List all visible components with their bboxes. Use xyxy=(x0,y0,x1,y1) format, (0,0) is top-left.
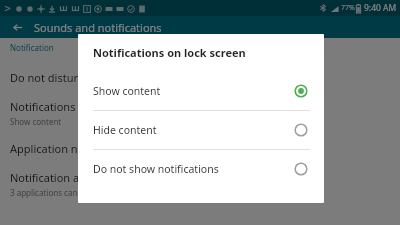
staticText: Sounds and notifications xyxy=(34,20,162,35)
staticText: Notification xyxy=(10,42,54,53)
button[interactable]: Notifications xyxy=(0,92,400,134)
staticText: Do not show notifications xyxy=(93,162,219,176)
staticText: Notifications xyxy=(10,99,76,114)
staticText: Hide content xyxy=(93,123,157,137)
button[interactable]: Do not disturb xyxy=(0,63,400,92)
staticText: Notifications on lock screen xyxy=(93,45,246,60)
staticText: 9:40 AM xyxy=(364,2,397,14)
button[interactable]: Show content xyxy=(78,72,324,110)
button[interactable]: Application notifications xyxy=(0,134,400,163)
staticText: Show content xyxy=(93,84,161,98)
staticText: Notification access xyxy=(10,170,107,185)
staticText: Application notifications xyxy=(10,141,135,156)
button[interactable]: Hide content xyxy=(78,111,324,149)
staticText: Show content xyxy=(10,116,62,127)
button[interactable]: Do not show notifications xyxy=(78,150,324,188)
button[interactable]: Notification access xyxy=(0,163,400,205)
staticText: 77% xyxy=(341,3,355,13)
staticText: 3 applications can read notifications. xyxy=(10,187,148,198)
staticText: Do not disturb xyxy=(10,70,85,85)
button[interactable]: Back xyxy=(0,16,34,38)
